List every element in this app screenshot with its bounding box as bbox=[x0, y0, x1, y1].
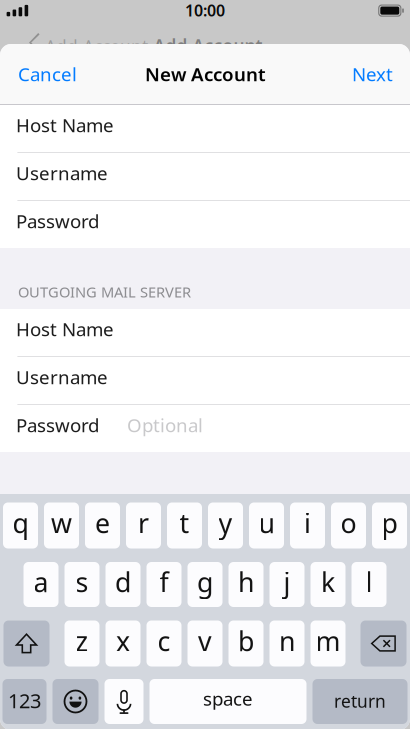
staticText: w bbox=[51, 505, 72, 541]
button[interactable]: return bbox=[312, 679, 407, 724]
button[interactable]: Next bbox=[303, 52, 410, 96]
button[interactable]: b bbox=[228, 620, 263, 666]
staticText: r bbox=[138, 505, 149, 541]
button[interactable]: c bbox=[146, 620, 181, 666]
button[interactable]: v bbox=[187, 620, 222, 666]
button[interactable]: 123 bbox=[2, 679, 46, 724]
button[interactable]: Emoji bbox=[52, 679, 98, 724]
staticText: space bbox=[203, 686, 253, 711]
staticText: y bbox=[218, 505, 232, 541]
button[interactable]: i bbox=[290, 502, 325, 548]
staticText: Add Account bbox=[153, 34, 262, 57]
button[interactable]: r bbox=[126, 502, 161, 548]
staticText: s bbox=[75, 564, 88, 600]
button[interactable]: Dictation bbox=[104, 679, 143, 724]
button[interactable]: e bbox=[85, 502, 120, 548]
button[interactable]: w bbox=[44, 502, 79, 548]
button[interactable]: o bbox=[331, 502, 366, 548]
button[interactable]: h bbox=[228, 562, 263, 607]
staticText: i bbox=[304, 505, 311, 541]
staticText: Username bbox=[16, 365, 108, 389]
staticText: 10:00 bbox=[185, 0, 225, 21]
staticText: Host Name bbox=[16, 317, 114, 341]
button[interactable]: k bbox=[310, 562, 345, 607]
button[interactable]: Password bbox=[0, 405, 410, 452]
staticText: Optional bbox=[127, 413, 203, 437]
button[interactable]: p bbox=[372, 502, 407, 548]
button[interactable]: u bbox=[249, 502, 284, 548]
button[interactable]: a bbox=[23, 562, 58, 607]
staticText: c bbox=[157, 623, 170, 659]
button[interactable]: x bbox=[105, 620, 140, 666]
staticText: x bbox=[116, 623, 130, 659]
staticText: q bbox=[12, 505, 28, 541]
button[interactable]: m bbox=[310, 620, 345, 666]
staticText: d bbox=[115, 564, 131, 600]
staticText: New Account bbox=[145, 62, 266, 86]
staticText: b bbox=[238, 623, 254, 659]
button[interactable]: g bbox=[187, 562, 222, 607]
button[interactable]: Username bbox=[0, 357, 410, 404]
staticText: Next bbox=[352, 62, 393, 86]
button[interactable]: j bbox=[269, 562, 304, 607]
staticText: u bbox=[258, 505, 274, 541]
staticText: v bbox=[198, 623, 212, 659]
staticText: p bbox=[381, 505, 397, 541]
staticText: f bbox=[159, 564, 168, 600]
staticText: Add Account bbox=[45, 35, 148, 58]
staticText: t bbox=[179, 505, 189, 541]
button[interactable]: z bbox=[64, 620, 99, 666]
staticText: g bbox=[197, 564, 213, 600]
staticText: 123 bbox=[8, 687, 41, 714]
button[interactable]: l bbox=[351, 562, 386, 607]
staticText: Host Name bbox=[16, 113, 114, 137]
staticText: j bbox=[283, 564, 290, 600]
staticText: m bbox=[315, 623, 340, 659]
staticText: k bbox=[321, 564, 335, 600]
button[interactable]: t bbox=[167, 502, 202, 548]
button[interactable]: Cancel bbox=[0, 52, 108, 96]
button[interactable]: s bbox=[64, 562, 99, 607]
button[interactable]: q bbox=[3, 502, 38, 548]
staticText: Cancel bbox=[18, 62, 77, 86]
staticText: l bbox=[365, 564, 372, 600]
staticText: Password bbox=[16, 413, 99, 437]
button[interactable]: Host Name bbox=[0, 105, 410, 152]
staticText: Username bbox=[16, 161, 108, 185]
button[interactable]: y bbox=[208, 502, 243, 548]
button[interactable]: f bbox=[146, 562, 181, 607]
button[interactable]: Delete bbox=[360, 620, 406, 666]
button[interactable]: Password bbox=[0, 201, 410, 248]
button[interactable]: Host Name bbox=[0, 309, 410, 356]
button[interactable]: n bbox=[269, 620, 304, 666]
button[interactable]: Username bbox=[0, 153, 410, 200]
button[interactable]: d bbox=[105, 562, 140, 607]
button[interactable]: Shift bbox=[3, 620, 49, 666]
staticText: OUTGOING MAIL SERVER bbox=[18, 282, 191, 301]
staticText: n bbox=[279, 623, 295, 659]
button[interactable]: space bbox=[149, 679, 306, 724]
staticText: h bbox=[238, 564, 254, 600]
staticText: e bbox=[95, 505, 110, 541]
staticText: o bbox=[340, 505, 356, 541]
staticText: Password bbox=[16, 209, 99, 233]
staticText: return bbox=[334, 689, 386, 712]
staticText: a bbox=[33, 564, 48, 600]
staticText: z bbox=[75, 623, 88, 659]
